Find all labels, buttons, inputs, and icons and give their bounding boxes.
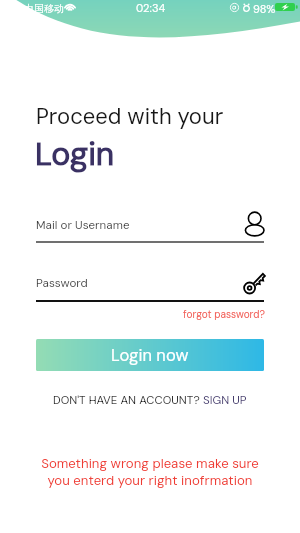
staticText: 98% <box>253 2 276 16</box>
button[interactable]: forgot password? <box>183 308 265 321</box>
staticText: Something wrong please make sure you ent… <box>0 455 300 489</box>
button[interactable]: SIGN UP <box>203 393 247 408</box>
staticText: Password <box>36 275 88 290</box>
button[interactable]: Mail or Username <box>36 212 264 244</box>
other: Show password <box>242 269 266 293</box>
button[interactable]: Password <box>36 270 264 302</box>
staticText: 中国移动 <box>24 2 64 15</box>
button[interactable]: Login now <box>36 339 264 371</box>
staticText: Login <box>35 133 115 175</box>
other: Account <box>242 211 266 235</box>
staticText: forgot password? <box>183 308 265 321</box>
staticText: Proceed with your <box>36 102 224 131</box>
staticText: 02:34 <box>136 1 166 15</box>
staticText: Login now <box>111 345 189 366</box>
staticText: DON'T HAVE AN ACCOUNT? <box>53 393 203 408</box>
staticText: Mail or Username <box>36 217 130 232</box>
